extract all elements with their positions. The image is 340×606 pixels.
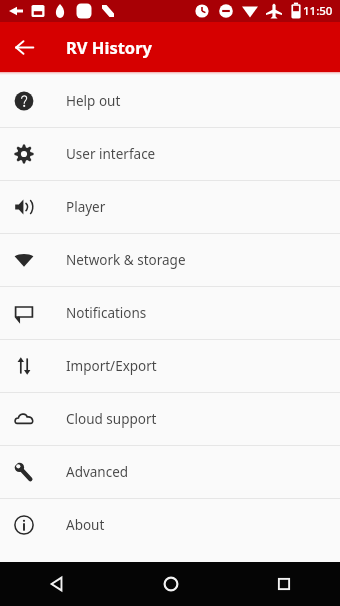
staticText: RV History [66,36,152,58]
button[interactable]: Import/Export [0,340,340,392]
button[interactable]: Recent apps [227,562,340,606]
staticText: User interface [66,145,156,163]
staticText: Cloud support [66,410,157,428]
button[interactable]: Back [5,28,43,66]
button[interactable]: Back [0,562,114,606]
button[interactable]: Help out [0,75,340,127]
staticText: Network & storage [66,251,186,269]
staticText: Notifications [66,304,147,322]
staticText: Advanced [66,463,129,481]
button[interactable]: Home [114,562,227,606]
staticText: Import/Export [66,357,157,375]
staticText: Help out [66,92,121,110]
button[interactable]: About [0,499,340,551]
button[interactable]: Cloud support [0,393,340,445]
staticText: About [66,516,105,534]
button[interactable]: User interface [0,128,340,180]
staticText: Player [66,198,106,216]
button[interactable]: Network & storage [0,234,340,286]
button[interactable]: Notifications [0,287,340,339]
staticText: 11:50 [303,3,333,19]
button[interactable]: Player [0,181,340,233]
button[interactable]: Advanced [0,446,340,498]
